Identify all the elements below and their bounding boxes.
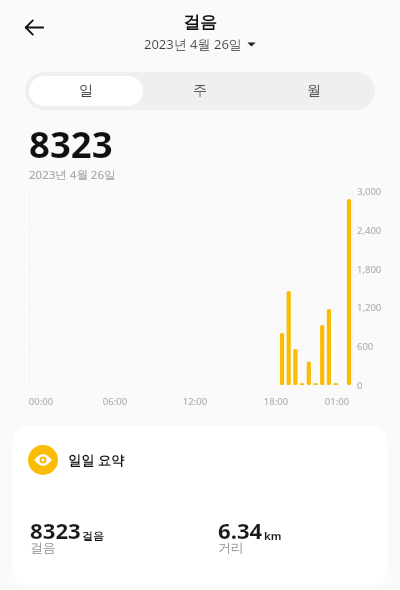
- button[interactable]: 월: [257, 76, 371, 106]
- staticText: km: [264, 528, 282, 543]
- staticText: 00:00: [24, 395, 58, 408]
- staticText: 12:00: [178, 395, 212, 408]
- staticText: 01:00: [320, 395, 354, 408]
- button[interactable]: Back: [16, 9, 52, 45]
- staticText: 18:00: [259, 395, 293, 408]
- button[interactable]: 2023년 4월 26일: [142, 34, 258, 54]
- button[interactable]: Daily summary: [12, 426, 388, 587]
- staticText: 일일 요약: [68, 451, 125, 469]
- staticText: 걸음: [183, 12, 217, 33]
- staticText: 걸음: [30, 540, 56, 556]
- button[interactable]: 주: [143, 76, 257, 106]
- staticText: 1,200: [357, 301, 382, 314]
- staticText: 0: [357, 379, 363, 392]
- button[interactable]: 일: [29, 76, 143, 106]
- staticText: 걸음: [82, 529, 104, 543]
- staticText: 거리: [218, 540, 244, 556]
- staticText: 06:00: [98, 395, 132, 408]
- staticText: 2023년 4월 26일: [29, 167, 116, 183]
- other: Daily summary: [28, 445, 58, 475]
- staticText: 주: [193, 82, 207, 100]
- staticText: 2,400: [357, 224, 382, 237]
- staticText: 6.34: [218, 515, 263, 545]
- staticText: 월: [307, 82, 321, 100]
- staticText: 2023년 4월 26일: [144, 35, 242, 53]
- staticText: 8323: [30, 515, 81, 545]
- staticText: 일: [79, 82, 93, 100]
- staticText: 8323: [29, 119, 113, 169]
- staticText: 600: [357, 340, 374, 353]
- staticText: 1,800: [357, 263, 382, 276]
- staticText: 3,000: [357, 185, 382, 198]
